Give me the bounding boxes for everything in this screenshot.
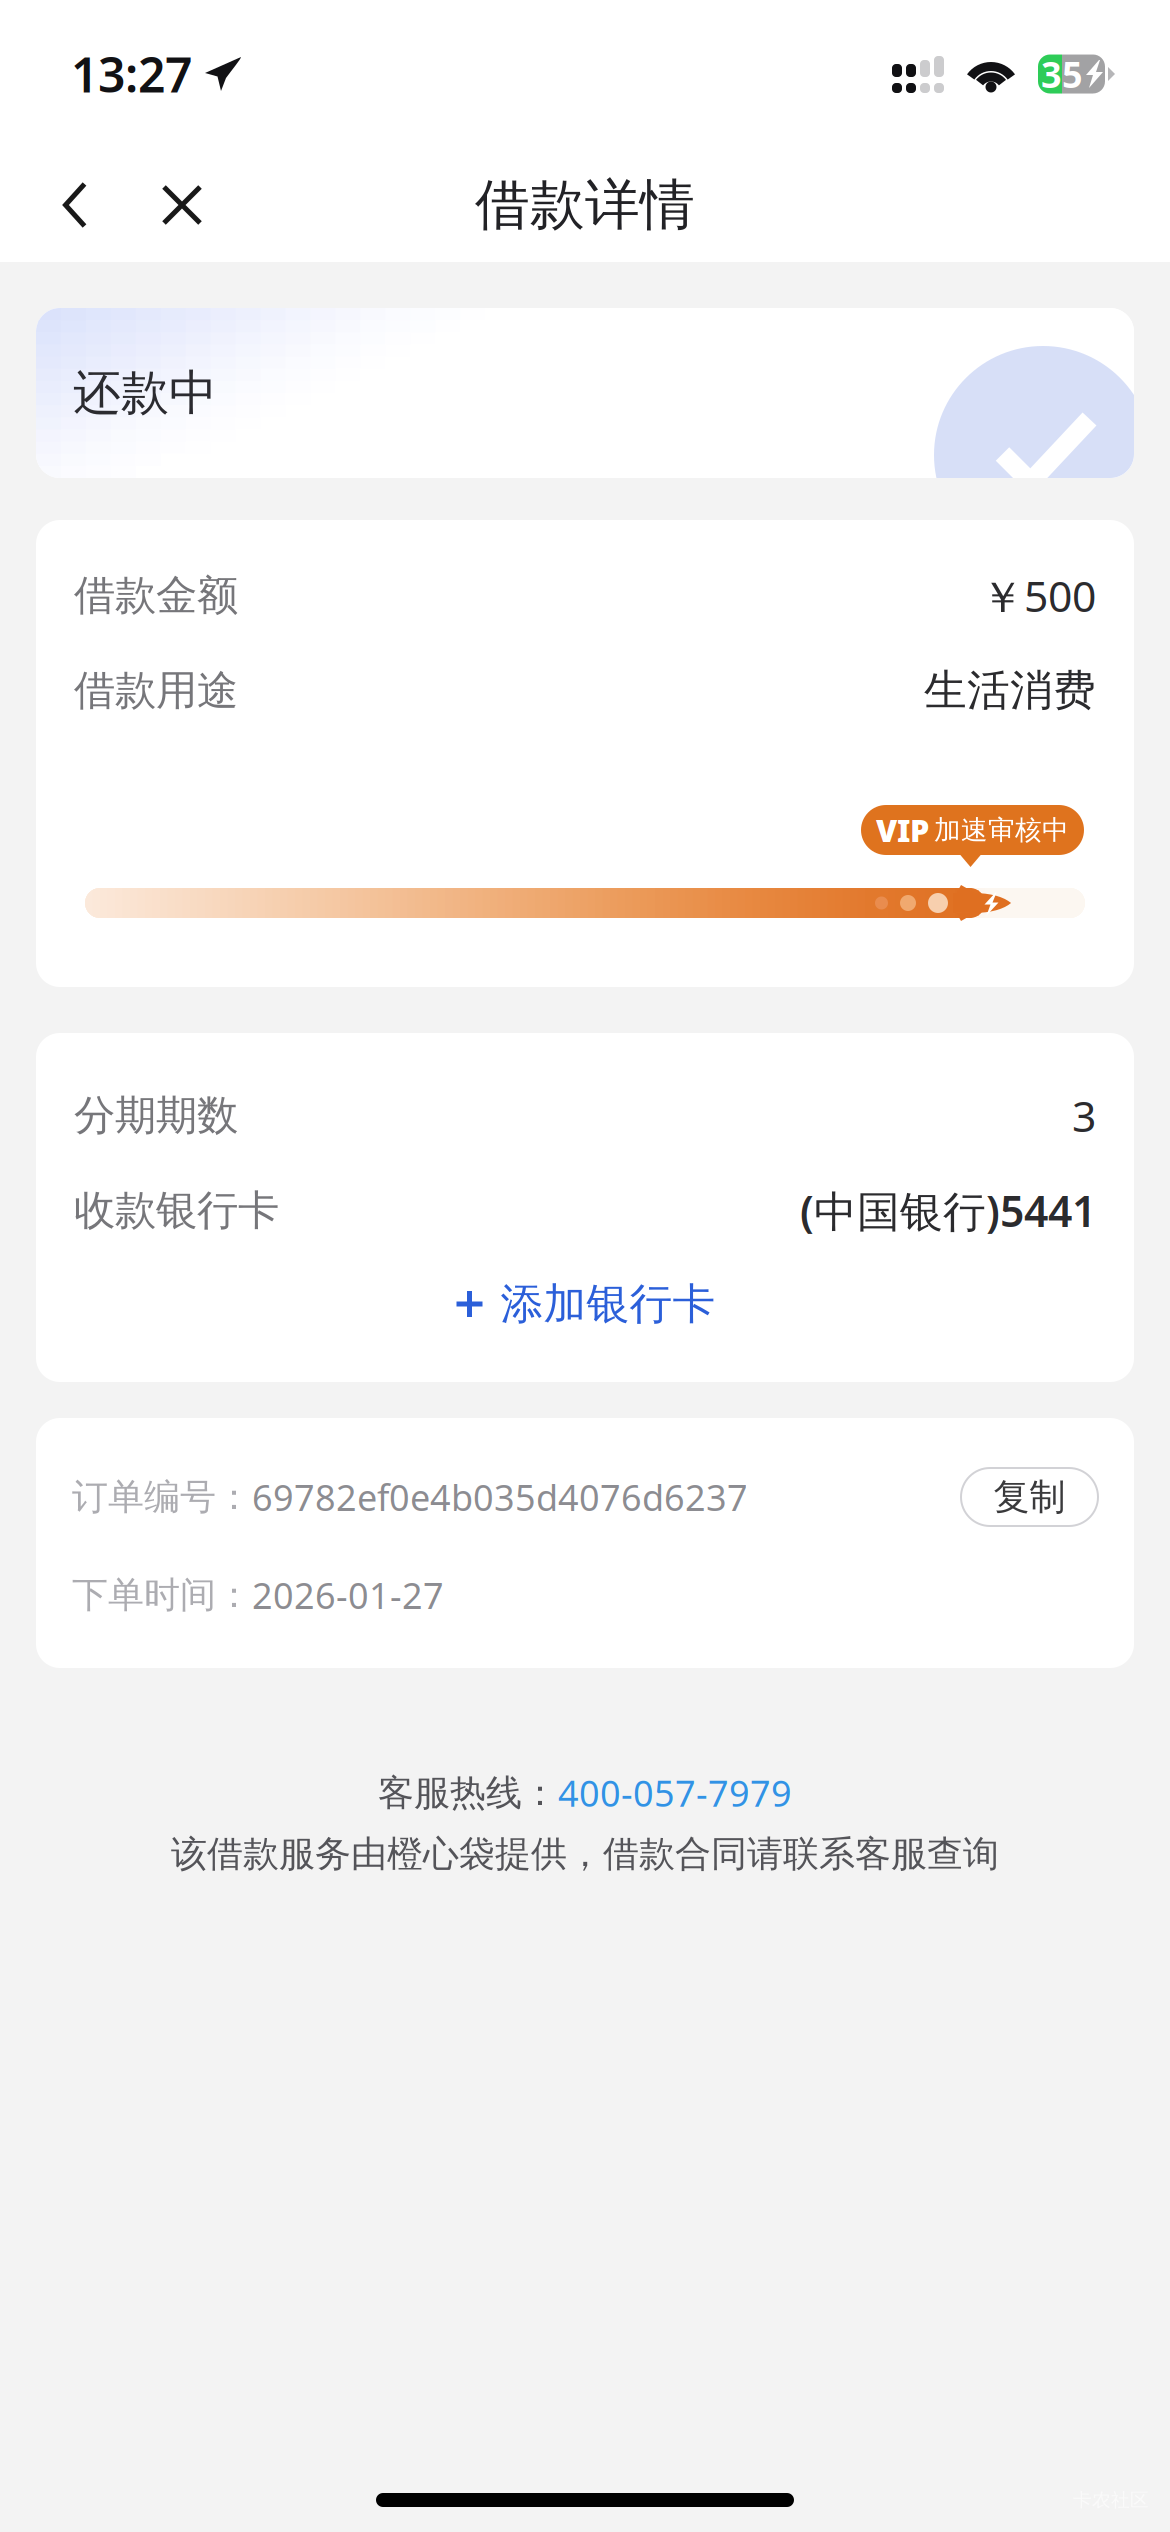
staticText: 分期期数	[74, 1090, 238, 1141]
staticText: 35	[1041, 50, 1083, 98]
staticText: 下单时间：	[72, 1573, 252, 1617]
staticText: 借款用途	[74, 665, 238, 716]
staticText: VIP	[876, 810, 929, 850]
staticText: 收款银行卡	[74, 1185, 279, 1236]
staticText: 还款中	[73, 363, 217, 422]
button[interactable]: 复制	[961, 1468, 1098, 1526]
staticText: 借款详情	[475, 171, 695, 238]
staticText: 添加银行卡	[500, 1278, 715, 1330]
staticText: 69782ef0e4b035d4076d6237	[252, 1473, 748, 1521]
staticText: 该借款服务由橙心袋提供，借款合同请联系客服查询	[171, 1832, 999, 1876]
staticText: 生活消费	[924, 664, 1096, 717]
button[interactable]: 关闭	[138, 157, 226, 253]
staticText: 3	[1072, 1087, 1096, 1144]
staticText: ￥500	[981, 567, 1096, 624]
button[interactable]: 400-057-7979	[558, 1769, 792, 1817]
staticText: 客服热线：	[378, 1771, 558, 1815]
staticText: (中国银行)5441	[800, 1182, 1096, 1239]
staticText: 订单编号：	[72, 1475, 252, 1519]
staticText: 借款金额	[74, 570, 238, 621]
staticText: 2026-01-27	[252, 1571, 444, 1619]
button[interactable]: 返回	[31, 157, 119, 253]
staticText: 400-057-7979	[558, 1769, 792, 1817]
staticText: 复制	[993, 1475, 1065, 1519]
staticText: 13:27	[71, 42, 192, 106]
button[interactable]: 添加银行卡	[74, 1258, 1096, 1350]
staticText: 加速审核中	[934, 814, 1069, 846]
